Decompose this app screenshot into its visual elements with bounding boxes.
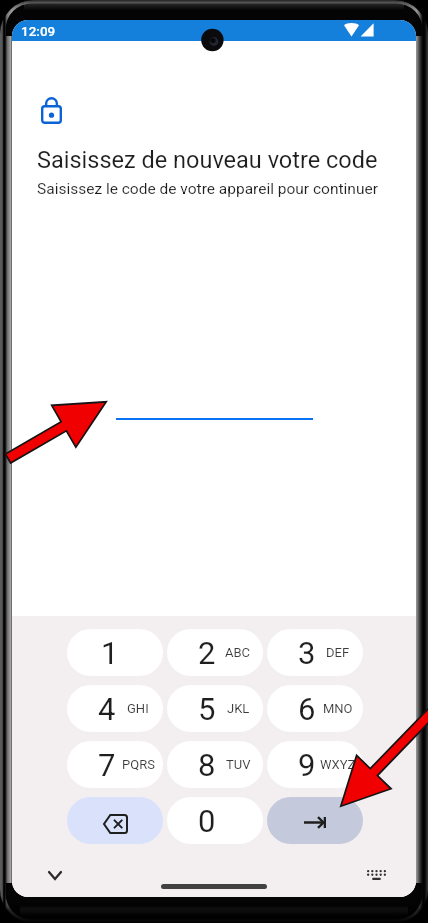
button[interactable]: 5 xyxy=(167,685,263,732)
button[interactable]: Hide keyboard xyxy=(41,861,69,889)
staticText: TUV xyxy=(226,757,251,772)
button[interactable]: 4 xyxy=(67,685,163,732)
button[interactable]: 8 xyxy=(167,741,263,788)
staticText: JKL xyxy=(227,701,250,716)
staticText: PQRS xyxy=(122,757,155,772)
staticText: 2 xyxy=(198,635,216,671)
button[interactable]: Switch keyboard xyxy=(362,861,390,889)
button[interactable]: 1 xyxy=(67,629,163,676)
staticText: 4 xyxy=(98,691,116,727)
button[interactable]: 6 xyxy=(267,685,363,732)
staticText: 9 xyxy=(298,747,316,783)
button[interactable]: Enter xyxy=(267,797,363,844)
staticText: WXYZ xyxy=(320,757,356,772)
button[interactable]: 9 xyxy=(267,741,363,788)
button[interactable]: 3 xyxy=(267,629,363,676)
staticText: 0 xyxy=(198,803,216,839)
button[interactable]: 0 xyxy=(167,797,263,844)
button[interactable]: Backspace xyxy=(67,797,163,844)
staticText: MNO xyxy=(323,701,353,716)
staticText: 6 xyxy=(298,691,316,727)
staticText: 1 xyxy=(101,635,119,671)
staticText: Saisissez le code de votre appareil pour… xyxy=(37,180,378,198)
staticText: 7 xyxy=(98,747,116,783)
button[interactable]: 2 xyxy=(167,629,263,676)
staticText: DEF xyxy=(326,645,350,660)
staticText: ABC xyxy=(225,645,251,660)
staticText: 5 xyxy=(198,691,216,727)
staticText: 12:09 xyxy=(21,23,56,39)
staticText: 8 xyxy=(198,747,216,783)
staticText: Saisissez de nouveau votre code xyxy=(37,146,378,174)
button[interactable]: 7 xyxy=(67,741,163,788)
staticText: 3 xyxy=(298,635,316,671)
staticText: GHI xyxy=(127,701,149,716)
